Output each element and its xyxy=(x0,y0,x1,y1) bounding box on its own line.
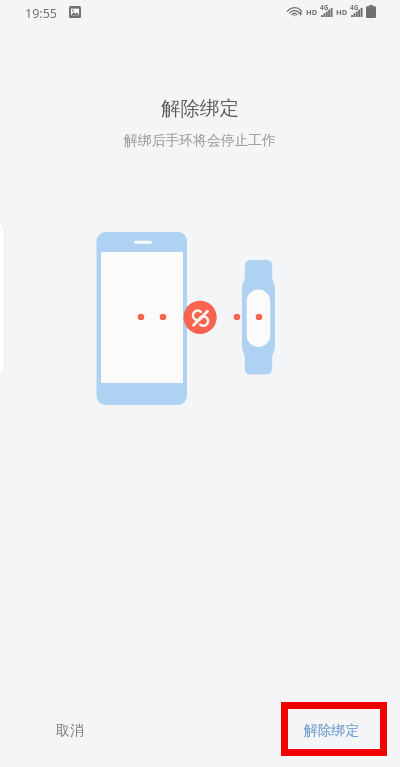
staticText: 解除绑定 xyxy=(161,96,239,121)
other: 手机与手环解除绑定示意图 xyxy=(0,0,400,767)
button[interactable]: 解除绑定 xyxy=(288,715,376,746)
staticText: HD xyxy=(336,7,348,17)
staticText: 4G xyxy=(350,3,359,12)
staticText: 解绑后手环将会停止工作 xyxy=(124,132,276,149)
button[interactable]: 取消 xyxy=(40,715,100,747)
staticText: 解除绑定 xyxy=(304,722,360,739)
staticText: 取消 xyxy=(56,722,84,740)
staticText: 19:55 xyxy=(25,5,57,22)
staticText: 4G xyxy=(320,3,329,12)
staticText: HD xyxy=(306,7,318,17)
